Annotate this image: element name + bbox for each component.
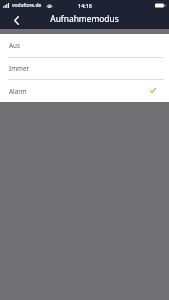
staticText: Aufnahmemodus [50, 13, 119, 24]
button[interactable]: Alarm [0, 80, 169, 102]
staticText: Immer [9, 64, 30, 73]
button[interactable]: Immer [0, 57, 169, 80]
staticText: vodafone.de [12, 2, 42, 9]
button[interactable]: Back [8, 12, 24, 28]
staticText: 14:16 [78, 2, 92, 9]
staticText: Aus [9, 41, 20, 50]
button[interactable]: Aus [0, 34, 169, 57]
staticText: Alarm [9, 87, 27, 96]
